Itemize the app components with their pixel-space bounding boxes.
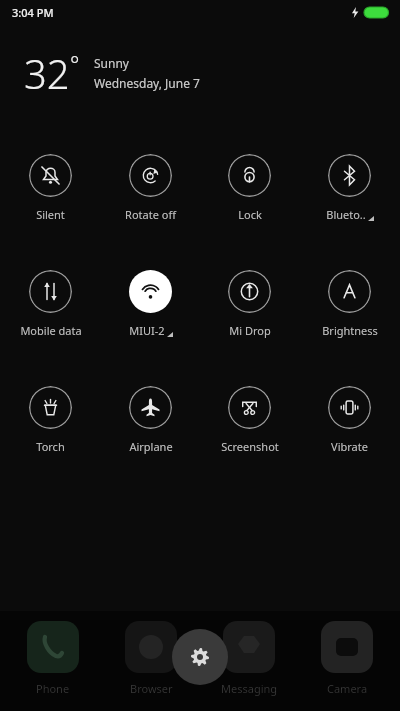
button[interactable]: Screenshot bbox=[201, 384, 298, 456]
button[interactable]: Settings bbox=[172, 629, 228, 685]
button[interactable]: Lock bbox=[201, 152, 298, 224]
staticText: Blueto.. bbox=[326, 207, 366, 222]
button[interactable]: Browser bbox=[106, 621, 196, 696]
staticText: Silent bbox=[36, 207, 65, 222]
staticText: Brightness bbox=[322, 323, 378, 338]
button[interactable]: Mobile data bbox=[2, 268, 99, 340]
button[interactable]: MIUI-2 bbox=[102, 268, 199, 340]
button[interactable]: Camera bbox=[302, 621, 392, 696]
staticText: Mobile data bbox=[20, 323, 82, 338]
staticText: Lock bbox=[238, 207, 262, 222]
staticText: Screenshot bbox=[221, 439, 279, 454]
button[interactable]: Mi Drop bbox=[201, 268, 298, 340]
button[interactable]: Vibrate bbox=[301, 384, 398, 456]
staticText: Rotate off bbox=[125, 207, 176, 222]
staticText: Browser bbox=[130, 681, 173, 696]
button[interactable]: Phone bbox=[8, 621, 98, 696]
button[interactable]: Messaging bbox=[204, 621, 294, 696]
button[interactable]: Torch bbox=[2, 384, 99, 456]
staticText: Airplane bbox=[129, 439, 173, 454]
button[interactable]: Airplane bbox=[102, 384, 199, 456]
staticText: Wednesday, June 7 bbox=[94, 75, 200, 91]
button[interactable]: Brightness slider bbox=[28, 647, 372, 687]
button[interactable]: Blueto.. bbox=[301, 152, 398, 224]
staticText: Phone bbox=[36, 681, 70, 696]
staticText: Torch bbox=[36, 439, 65, 454]
staticText: MIUI-2 bbox=[129, 323, 165, 338]
staticText: Sunny bbox=[94, 55, 129, 71]
staticText: Messaging bbox=[221, 681, 278, 696]
staticText: Mi Drop bbox=[229, 323, 271, 338]
staticText: Camera bbox=[327, 681, 368, 696]
button[interactable]: Brightness bbox=[301, 268, 398, 340]
staticText: 32 bbox=[24, 46, 70, 100]
staticText: ° bbox=[70, 48, 80, 78]
button[interactable]: Silent bbox=[2, 152, 99, 224]
staticText: 3:04 PM bbox=[12, 5, 54, 20]
button[interactable]: Rotate off bbox=[102, 152, 199, 224]
staticText: Vibrate bbox=[331, 439, 368, 454]
